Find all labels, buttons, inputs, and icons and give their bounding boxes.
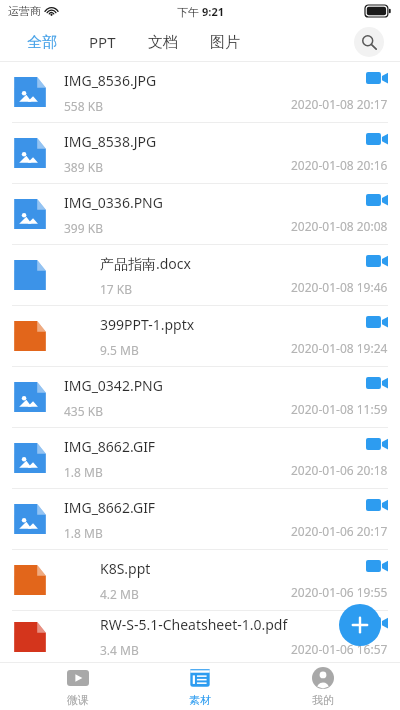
staticText: 399 KB (64, 220, 103, 236)
staticText: 下午 (177, 4, 202, 19)
button[interactable]: 我的 (278, 663, 368, 710)
staticText: 全部 (27, 33, 57, 52)
staticText: 素材 (189, 693, 211, 707)
staticText: IMG_8662.GIF (64, 437, 156, 456)
staticText: 2020-01-08 19:46 (291, 279, 388, 295)
staticText: 2020-01-08 20:17 (291, 96, 388, 112)
button[interactable]: 文档 (146, 29, 180, 56)
button[interactable]: W (0, 245, 400, 306)
button[interactable]: RW-S-5.1-Cheatsheet-1.0.pdf (0, 611, 400, 662)
staticText: 2020-01-08 20:08 (291, 218, 388, 234)
button[interactable]: P (0, 306, 400, 367)
button[interactable]: 图片 (208, 29, 242, 56)
staticText: 4.2 MB (100, 586, 139, 602)
staticText: RW-S-5.1-Cheatsheet-1.0.pdf (100, 615, 288, 634)
staticText: 2020-01-08 20:16 (291, 157, 388, 173)
staticText: 运营商 (8, 4, 41, 18)
staticText: IMG_8536.JPG (64, 71, 157, 90)
staticText: 2020-01-08 19:24 (291, 340, 388, 356)
button[interactable]: IMG_0336.PNG (0, 184, 400, 245)
staticText: 文档 (148, 33, 178, 52)
staticText: 389 KB (64, 159, 103, 175)
button[interactable]: IMG_8662.GIF (0, 489, 400, 550)
staticText: IMG_8662.GIF (64, 498, 156, 517)
button[interactable]: 全部 (25, 29, 59, 56)
button[interactable]: IMG_8538.JPG (0, 123, 400, 184)
button[interactable]: Add (339, 604, 381, 646)
staticText: 399PPT-1.pptx (100, 315, 195, 334)
staticText: 2020-01-06 20:17 (291, 523, 388, 539)
staticText: 1.8 MB (64, 464, 103, 480)
staticText: 2020-01-06 19:55 (291, 584, 388, 600)
staticText: IMG_0336.PNG (64, 193, 163, 212)
button[interactable]: Search (354, 27, 384, 57)
staticText: 9:21 (202, 4, 224, 19)
staticText: 2020-01-06 20:18 (291, 462, 388, 478)
button[interactable]: 微课 (33, 663, 123, 710)
button[interactable]: IMG_0342.PNG (0, 367, 400, 428)
staticText: 558 KB (64, 98, 103, 114)
staticText: 1.8 MB (64, 525, 103, 541)
staticText: K8S.ppt (100, 559, 151, 578)
staticText: PPT (89, 32, 116, 52)
button[interactable]: IMG_8536.JPG (0, 62, 400, 123)
staticText: 图片 (210, 33, 240, 52)
staticText: 435 KB (64, 403, 103, 419)
staticText: 9.5 MB (100, 342, 139, 358)
button[interactable]: PPT (87, 28, 118, 56)
staticText: 产品指南.docx (100, 254, 191, 273)
staticText: IMG_0342.PNG (64, 376, 163, 395)
button[interactable]: P (0, 550, 400, 611)
staticText: 3.4 MB (100, 642, 139, 658)
staticText: 我的 (312, 693, 334, 707)
staticText: 2020-01-06 16:57 (291, 641, 388, 657)
staticText: 17 KB (100, 281, 133, 297)
staticText: IMG_8538.JPG (64, 132, 157, 151)
button[interactable]: 素材 (155, 663, 245, 710)
staticText: 微课 (67, 693, 89, 707)
button[interactable]: IMG_8662.GIF (0, 428, 400, 489)
staticText: 2020-01-08 11:59 (291, 401, 388, 417)
